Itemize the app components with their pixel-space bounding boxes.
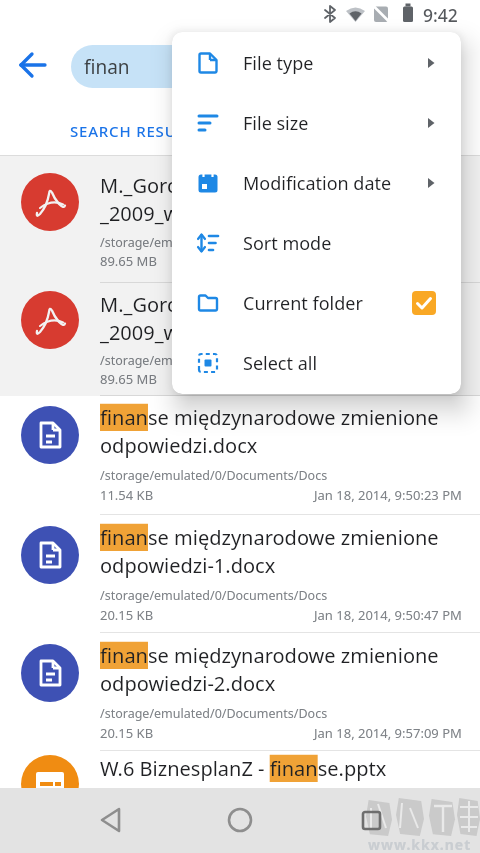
- staticText: 11.54 KB: [100, 486, 154, 504]
- staticText: /storage/emulated/0/Download: [100, 352, 286, 369]
- button[interactable]: [95, 805, 125, 835]
- staticText: _2009_wyklady.pdf: [100, 200, 276, 227]
- staticText: 89.65 MB: [100, 252, 157, 270]
- staticText: /storage/emulated/0/Documents/Docs: [100, 587, 328, 604]
- staticText: finanse międzynarodowe zmienione: [100, 642, 439, 669]
- staticText: Jan 18, 2014, 9:57:09 PM: [314, 724, 462, 742]
- staticText: Jan 18, 2014, 9:50:23 PM: [314, 486, 462, 504]
- staticText: M._Gorczyńska_finanse: [100, 291, 318, 318]
- staticText: odpowiedzi.docx: [100, 432, 258, 459]
- button[interactable]: Sort mode: [172, 213, 461, 273]
- staticText: finanse międzynarodowe zmienione: [100, 524, 439, 551]
- staticText: odpowiedzi-2.docx: [100, 670, 276, 697]
- button[interactable]: finanse międzynarodowe zmienione: [0, 395, 480, 515]
- button[interactable]: M._Gorczyńska_finanse: [0, 162, 480, 283]
- staticText: 20.15 KB: [100, 606, 154, 624]
- staticText: /storage/emulated/0/Download: [100, 234, 286, 251]
- staticText: /storage/emulated/0/Documents/Docs: [100, 705, 328, 722]
- button[interactable]: finanse międzynarodowe zmienione: [0, 633, 480, 751]
- staticText: Jan 18, 2014, 9:50:47 PM: [314, 606, 462, 624]
- staticText: _2009_wyklady.pdf: [100, 319, 276, 346]
- staticText: Select all: [243, 351, 318, 376]
- staticText: Current folder: [243, 291, 363, 316]
- staticText: 20.15 KB: [100, 724, 154, 742]
- staticText: Modification date: [243, 171, 392, 196]
- button[interactable]: W.6 BiznesplanZ - finanse.pptx: [0, 751, 480, 851]
- button[interactable]: [18, 50, 48, 80]
- button[interactable]: [225, 805, 255, 835]
- staticText: W.6 BiznesplanZ - finanse.pptx: [100, 755, 387, 782]
- staticText: /storage/emulated/0/Documents/Docs: [100, 467, 328, 484]
- button[interactable]: finan: [71, 45, 271, 88]
- staticText: finan: [84, 54, 130, 80]
- button[interactable]: [357, 805, 387, 835]
- button[interactable]: Select all: [172, 333, 461, 393]
- staticText: Sort mode: [243, 231, 332, 256]
- staticText: 89.65 MB: [100, 370, 157, 388]
- button[interactable]: File type: [172, 33, 461, 93]
- staticText: finanse międzynarodowe zmienione: [100, 404, 439, 431]
- staticText: File size: [243, 111, 309, 136]
- staticText: www.kkx.net: [368, 835, 472, 853]
- button[interactable]: SEARCH RESULTS: [70, 121, 204, 141]
- button[interactable]: finanse międzynarodowe zmienione: [0, 515, 480, 633]
- button[interactable]: M._Gorczyńska_finanse: [0, 282, 480, 396]
- staticText: 9:42: [423, 3, 458, 27]
- staticText: odpowiedzi-1.docx: [100, 552, 276, 579]
- staticText: M._Gorczyńska_finanse: [100, 172, 318, 199]
- button[interactable]: Modification date: [172, 153, 461, 213]
- button[interactable]: Current folder: [172, 273, 461, 333]
- button[interactable]: File size: [172, 93, 461, 153]
- staticText: File type: [243, 51, 314, 76]
